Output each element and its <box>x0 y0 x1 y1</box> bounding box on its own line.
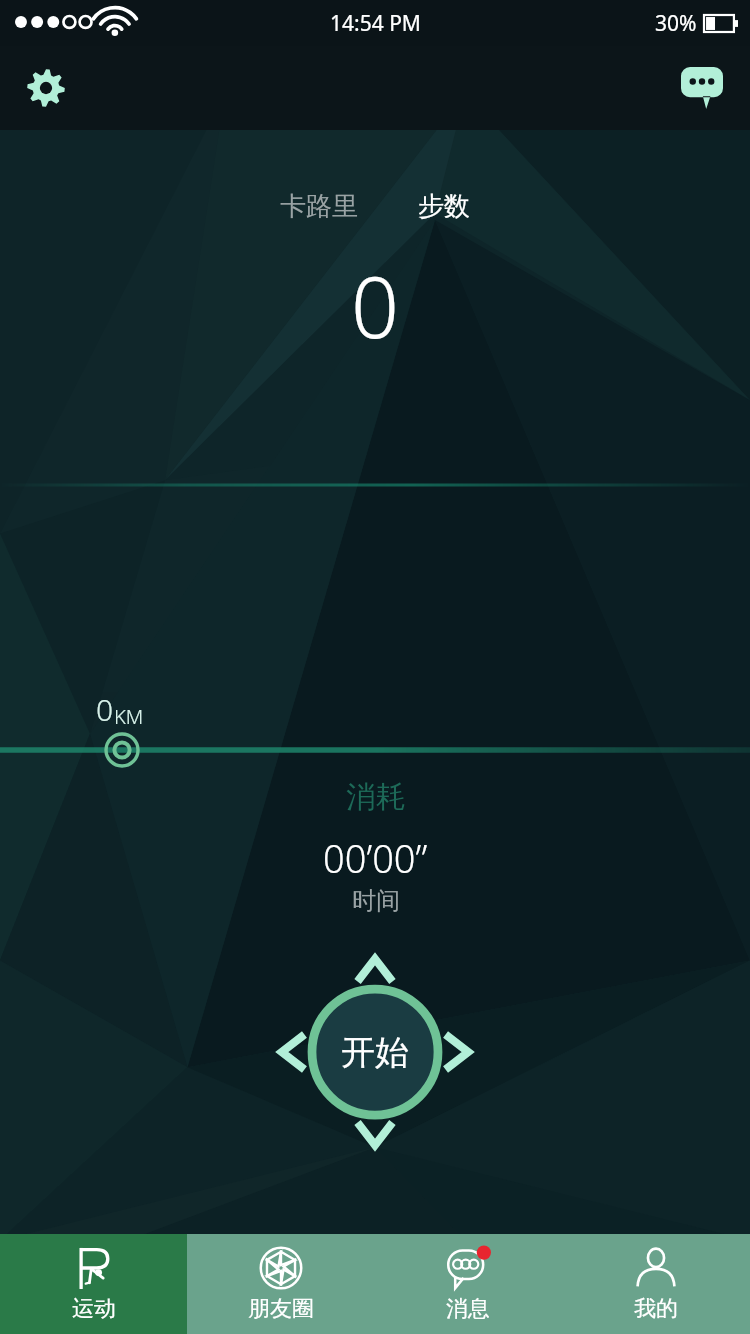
button[interactable]: 开始 <box>311 988 439 1116</box>
button[interactable]: 消息 <box>374 1234 562 1334</box>
staticText: 步数 <box>418 190 470 223</box>
button[interactable]: 运动 <box>0 1234 187 1334</box>
button[interactable]: 朋友圈 <box>187 1234 374 1334</box>
staticText: KM <box>114 703 144 730</box>
staticText: 00’00” <box>323 832 428 884</box>
staticText: 运动 <box>72 1295 116 1323</box>
button[interactable]: 卡路里 <box>274 186 364 227</box>
staticText: 14:54 PM <box>330 9 421 38</box>
button[interactable]: 步数 <box>412 186 476 227</box>
staticText: 我的 <box>634 1295 678 1323</box>
staticText: 时间 <box>352 886 400 916</box>
staticText: 0 <box>96 689 114 730</box>
staticText: 0 <box>351 248 399 362</box>
staticText: 卡路里 <box>280 190 358 223</box>
button[interactable]: Settings <box>18 60 74 116</box>
staticText: 朋友圈 <box>248 1295 314 1323</box>
button[interactable]: 我的 <box>562 1234 750 1334</box>
staticText: 开始 <box>341 1031 409 1074</box>
staticText: 消息 <box>446 1295 490 1323</box>
staticText: 30% <box>655 9 697 38</box>
button[interactable]: Messages <box>674 60 730 116</box>
staticText: 消耗 <box>346 778 406 816</box>
